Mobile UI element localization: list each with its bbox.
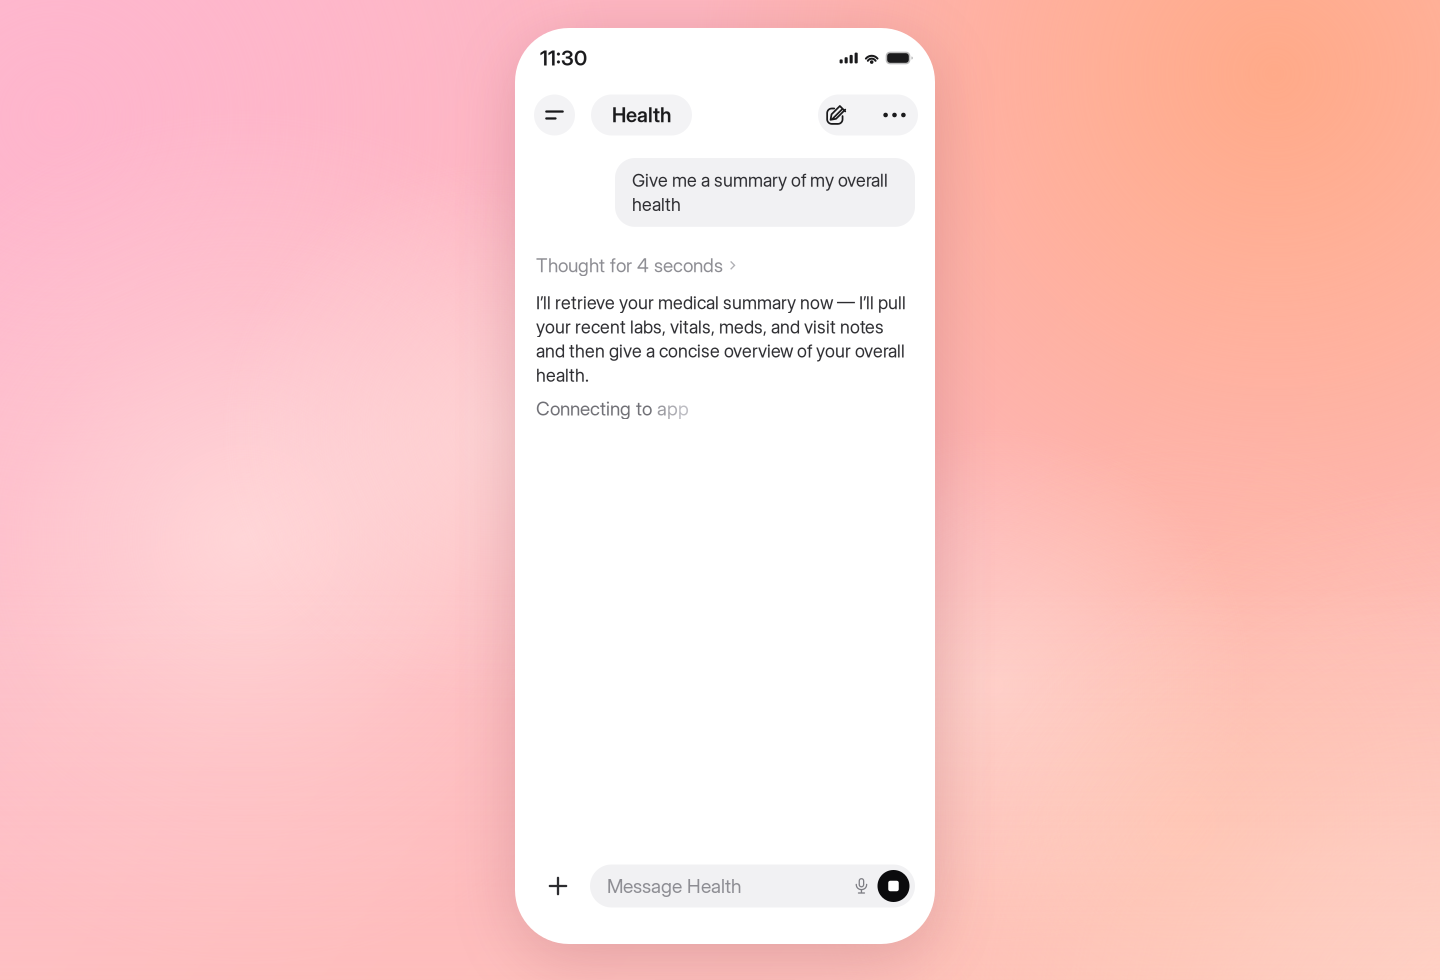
staticText: Thought for 4 seconds	[536, 254, 723, 277]
staticText: 11:30	[540, 45, 587, 70]
staticText: a	[657, 397, 667, 420]
button[interactable]: Dictate	[847, 869, 875, 903]
staticText: Message Health	[607, 874, 742, 898]
button[interactable]: Stop generating	[877, 870, 909, 902]
button[interactable]: Health	[591, 94, 692, 135]
staticText: p	[667, 397, 678, 420]
button[interactable]: Show sidebar	[534, 94, 575, 135]
button[interactable]: More options	[855, 94, 918, 135]
staticText: Health	[612, 103, 671, 127]
staticText: I’ll retrieve your medical summary now —…	[536, 292, 906, 386]
button[interactable]: Thought for 4 seconds	[536, 251, 736, 280]
button[interactable]: New chat	[818, 94, 855, 135]
staticText: p	[678, 397, 689, 420]
button[interactable]: Add attachment	[515, 864, 590, 908]
staticText: Give me a summary of my overall health	[632, 169, 888, 215]
staticText: Connecting to	[536, 397, 657, 420]
